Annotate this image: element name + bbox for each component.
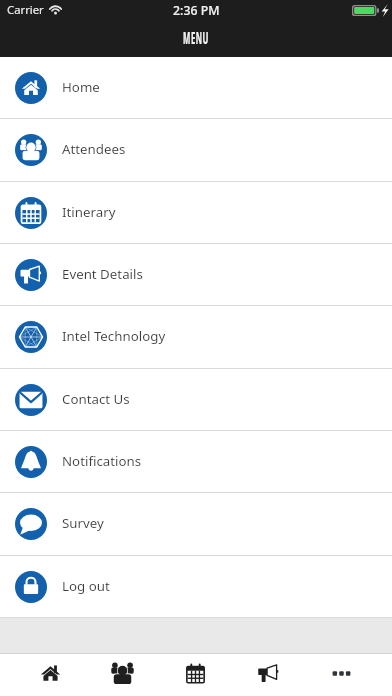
button[interactable]: Contact Us (0, 369, 392, 431)
button[interactable]: Itinerary (0, 182, 392, 244)
staticText: Log out (62, 577, 110, 595)
button[interactable]: Event Details (232, 654, 305, 693)
button[interactable]: Itinerary (159, 654, 232, 693)
staticText: Notifications (62, 452, 142, 470)
button[interactable]: Notifications (0, 431, 392, 493)
staticText: Itinerary (62, 203, 116, 221)
button[interactable]: More (305, 654, 378, 693)
button[interactable]: Home (14, 654, 86, 693)
button[interactable]: Attendees (0, 119, 392, 182)
button[interactable]: Intel Technology (0, 306, 392, 369)
button[interactable]: Attendees (86, 654, 159, 693)
staticText: Contact Us (62, 390, 130, 408)
staticText: Intel Technology (62, 327, 166, 345)
button[interactable]: Event Details (0, 244, 392, 306)
button[interactable]: Home (0, 57, 392, 119)
staticText: Event Details (62, 265, 143, 283)
staticText: Carrier (7, 2, 44, 17)
button[interactable]: Survey (0, 493, 392, 556)
staticText: Home (62, 78, 100, 96)
staticText: Attendees (62, 140, 126, 158)
staticText: MENU (183, 28, 209, 49)
staticText: Survey (62, 514, 104, 532)
button[interactable]: Log out (0, 556, 392, 618)
staticText: 2:36 PM (173, 2, 220, 19)
